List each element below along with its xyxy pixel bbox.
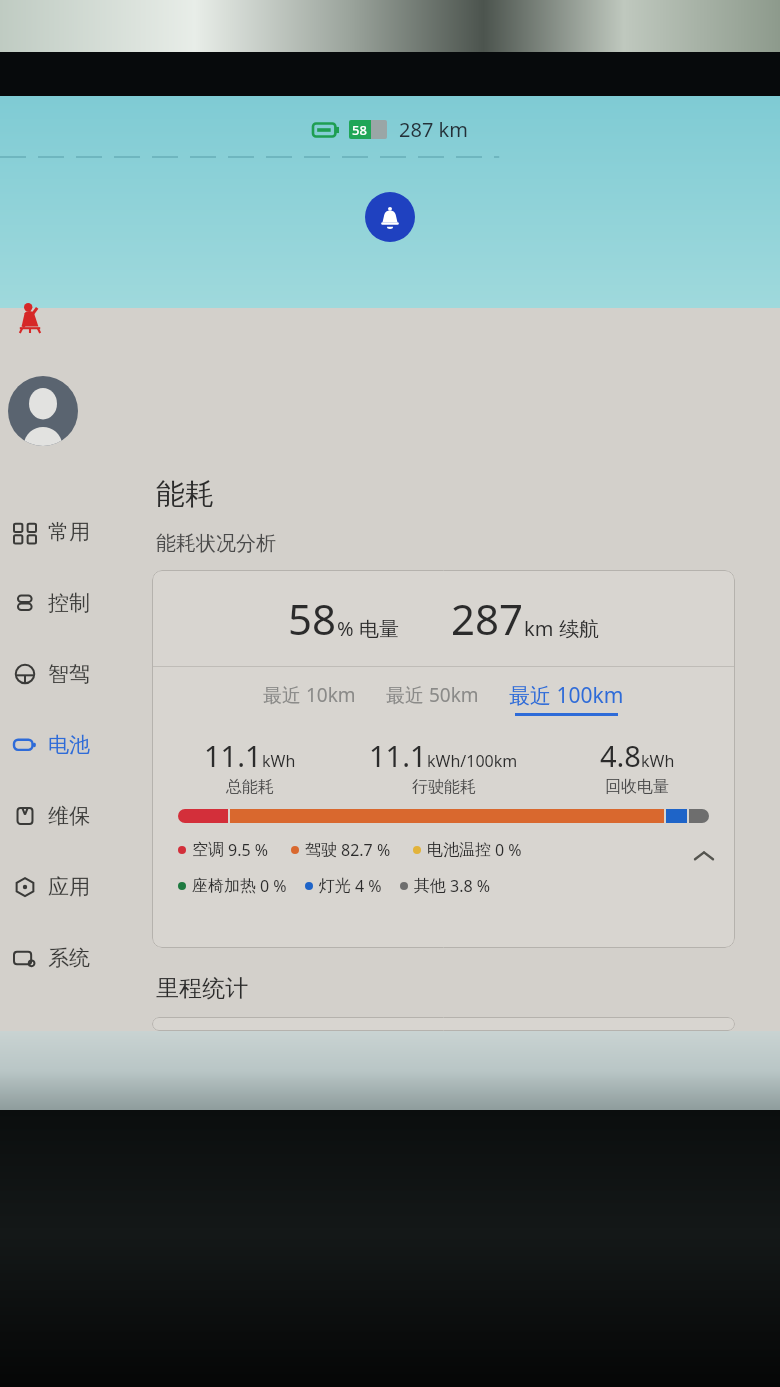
staticText: 9.5 % (228, 839, 269, 861)
staticText: 维保 (48, 803, 90, 829)
staticText: 能耗状况分析 (156, 531, 276, 556)
staticText: 58 (288, 590, 337, 647)
staticText: 应用 (48, 874, 90, 900)
button[interactable]: 控制 (0, 567, 152, 638)
staticText: 287 (451, 590, 524, 647)
staticText: 能耗 (156, 476, 214, 513)
staticText: km (524, 615, 554, 642)
staticText: % (337, 615, 354, 642)
staticText: 回收电量 (605, 777, 669, 797)
button[interactable]: 灯光 (305, 875, 382, 897)
staticText: 智驾 (48, 661, 90, 687)
button[interactable]: 最近 100km (505, 679, 628, 718)
staticText: 58 (352, 121, 367, 139)
staticText: 系统 (48, 945, 90, 971)
staticText: 3.8 % (450, 875, 491, 897)
button[interactable]: Profile (8, 376, 78, 446)
button[interactable]: 其他 (400, 875, 491, 897)
button[interactable]: 系统 (0, 922, 152, 993)
button[interactable]: 电池 (0, 709, 152, 780)
button[interactable]: 智驾 (0, 638, 152, 709)
staticText: 4.8 (600, 736, 641, 775)
button[interactable]: 座椅加热 (178, 875, 287, 897)
staticText: kWh (262, 750, 296, 772)
button[interactable]: 常用 (0, 496, 152, 567)
staticText: 0 % (495, 839, 522, 861)
staticText: 11.1 (369, 736, 427, 775)
staticText: 0 % (260, 875, 287, 897)
staticText: 里程统计 (156, 974, 248, 1003)
staticText: 常用 (48, 519, 90, 545)
staticText: 控制 (48, 590, 90, 616)
button[interactable]: Collapse (687, 839, 721, 873)
staticText: 空调 (192, 840, 224, 860)
button[interactable]: 170 (152, 1017, 735, 1031)
staticText: 11.1 (204, 736, 262, 775)
staticText: 电池温控 (427, 840, 491, 860)
staticText: 灯光 (319, 876, 351, 896)
button[interactable]: 应用 (0, 851, 152, 922)
button[interactable]: 最近 50km (382, 680, 483, 716)
button[interactable]: 最近 10km (259, 680, 360, 716)
staticText: 287 km (399, 116, 468, 143)
button[interactable]: 驾驶 (291, 839, 391, 861)
staticText: 驾驶 (305, 840, 337, 860)
button[interactable]: 空调 (178, 839, 269, 861)
staticText: 续航 (559, 617, 599, 642)
staticText: kWh/100km (427, 750, 518, 772)
staticText: 最近 10km (263, 682, 356, 708)
staticText: 电量 (359, 617, 399, 642)
staticText: 82.7 % (341, 839, 391, 861)
staticText: 最近 100km (509, 681, 624, 710)
staticText: 其他 (414, 876, 446, 896)
staticText: 4 % (355, 875, 382, 897)
staticText: 座椅加热 (192, 876, 256, 896)
staticText: 最近 50km (386, 682, 479, 708)
button[interactable]: Notifications (365, 192, 415, 242)
staticText: 电池 (48, 732, 90, 758)
staticText: 行驶能耗 (412, 777, 476, 797)
button[interactable]: 电池温控 (413, 839, 522, 861)
button[interactable]: 维保 (0, 780, 152, 851)
button[interactable]: Seat belt warning (8, 296, 52, 340)
staticText: 总能耗 (226, 777, 274, 797)
staticText: kWh (641, 750, 675, 772)
